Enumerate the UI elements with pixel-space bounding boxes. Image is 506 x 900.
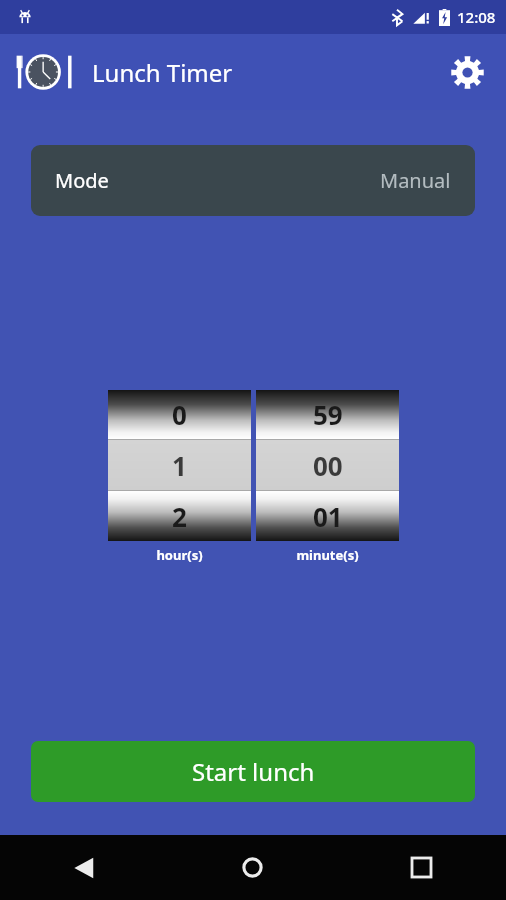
staticText: 00 [313,448,343,483]
button[interactable]: Home [168,835,337,900]
button[interactable]: Back [0,835,168,900]
staticText: 01 [313,499,343,534]
staticText: minute(s) [296,546,359,564]
staticText: Manual [380,167,451,194]
button[interactable]: Recent apps [337,835,506,900]
staticText: 12:08 [457,7,496,27]
staticText: Mode [55,167,109,194]
staticText: hour(s) [156,546,203,564]
button[interactable]: Settings [444,49,490,95]
button[interactable]: Start lunch [31,741,475,802]
staticText: Start lunch [192,755,315,788]
staticText: Lunch Timer [92,56,233,89]
button[interactable]: 0 [108,390,251,541]
button[interactable]: Mode [31,145,475,216]
button[interactable]: 59 [256,390,399,541]
staticText: 1 [172,448,187,483]
staticText: 2 [172,499,187,534]
staticText: 0 [172,397,187,432]
staticText: 59 [313,397,343,432]
